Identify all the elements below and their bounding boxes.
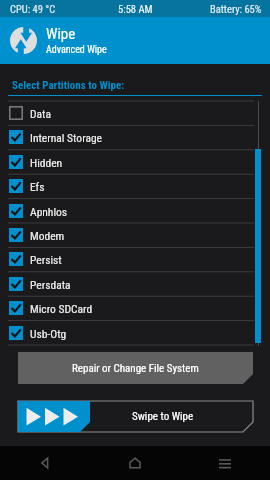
button[interactable]: Usb-Otg (0, 321, 270, 345)
button[interactable]: Efs (0, 174, 270, 198)
button[interactable]: Home (90, 446, 180, 480)
staticText: Micro SDCard (30, 302, 93, 315)
button[interactable]: Hidden (0, 150, 270, 174)
button[interactable]: Wipe (0, 17, 270, 64)
staticText: Persdata (30, 278, 71, 291)
button[interactable]: Internal Storage (0, 125, 270, 149)
staticText: 5:58 AM (118, 3, 153, 15)
button[interactable]: Repair or Change File System (18, 352, 253, 384)
button[interactable]: Apnhlos (0, 199, 270, 223)
staticText: Wipe (46, 25, 76, 43)
staticText: Battery: 65% (210, 3, 262, 15)
staticText: Usb-Otg (30, 327, 67, 340)
staticText: Persist (30, 253, 62, 266)
button[interactable]: Micro SDCard (0, 296, 270, 320)
staticText: Data (30, 107, 51, 120)
staticText: Hidden (30, 156, 63, 169)
button[interactable]: Persdata (0, 272, 270, 296)
button[interactable]: Recent apps (180, 446, 270, 480)
staticText: Efs (30, 180, 45, 193)
button[interactable]: Swipe to Wipe (18, 401, 253, 432)
staticText: Modem (30, 229, 65, 242)
button[interactable]: Data (0, 101, 270, 125)
staticText: CPU: 49 °C (10, 3, 56, 15)
staticText: Repair or Change File System (72, 362, 199, 375)
button[interactable]: Back (0, 446, 90, 480)
staticText: Apnhlos (30, 205, 68, 218)
staticText: Select Partitions to Wipe: (12, 79, 125, 92)
staticText: Swipe to Wipe (132, 410, 194, 423)
staticText: Advanced Wipe (46, 44, 107, 56)
staticText: Internal Storage (30, 131, 102, 144)
button[interactable]: Persist (0, 247, 270, 271)
button[interactable]: Modem (0, 223, 270, 247)
